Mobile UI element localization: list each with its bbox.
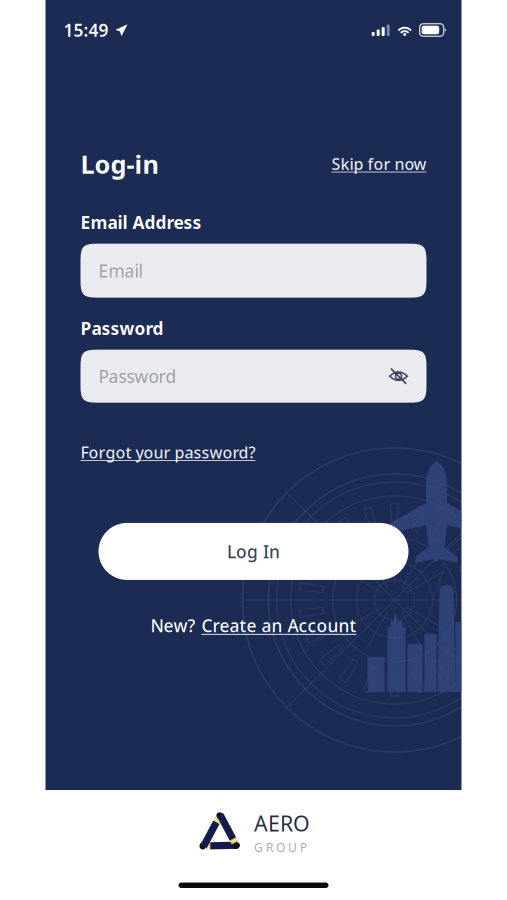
staticText: 15:49 bbox=[63, 18, 108, 41]
staticText: Log In bbox=[227, 540, 280, 563]
staticText: Email bbox=[98, 259, 142, 282]
button[interactable]: Forgot your password? bbox=[80, 442, 255, 463]
staticText: Create an Account bbox=[201, 614, 356, 637]
staticText: New? bbox=[150, 614, 195, 637]
staticText: Forgot your password? bbox=[80, 442, 255, 463]
staticText: Skip for now bbox=[331, 153, 426, 174]
staticText: G R O U P bbox=[254, 839, 307, 855]
staticText: Email Address bbox=[80, 211, 201, 234]
button[interactable]: Log In bbox=[98, 523, 408, 580]
button[interactable]: Create an Account bbox=[201, 614, 356, 637]
staticText: Password bbox=[98, 365, 176, 388]
button[interactable]: Skip for now bbox=[331, 153, 426, 174]
button[interactable]: Show password bbox=[388, 366, 408, 386]
staticText: Log-in bbox=[80, 147, 158, 181]
staticText: AERO bbox=[254, 809, 310, 837]
staticText: Password bbox=[80, 317, 163, 340]
